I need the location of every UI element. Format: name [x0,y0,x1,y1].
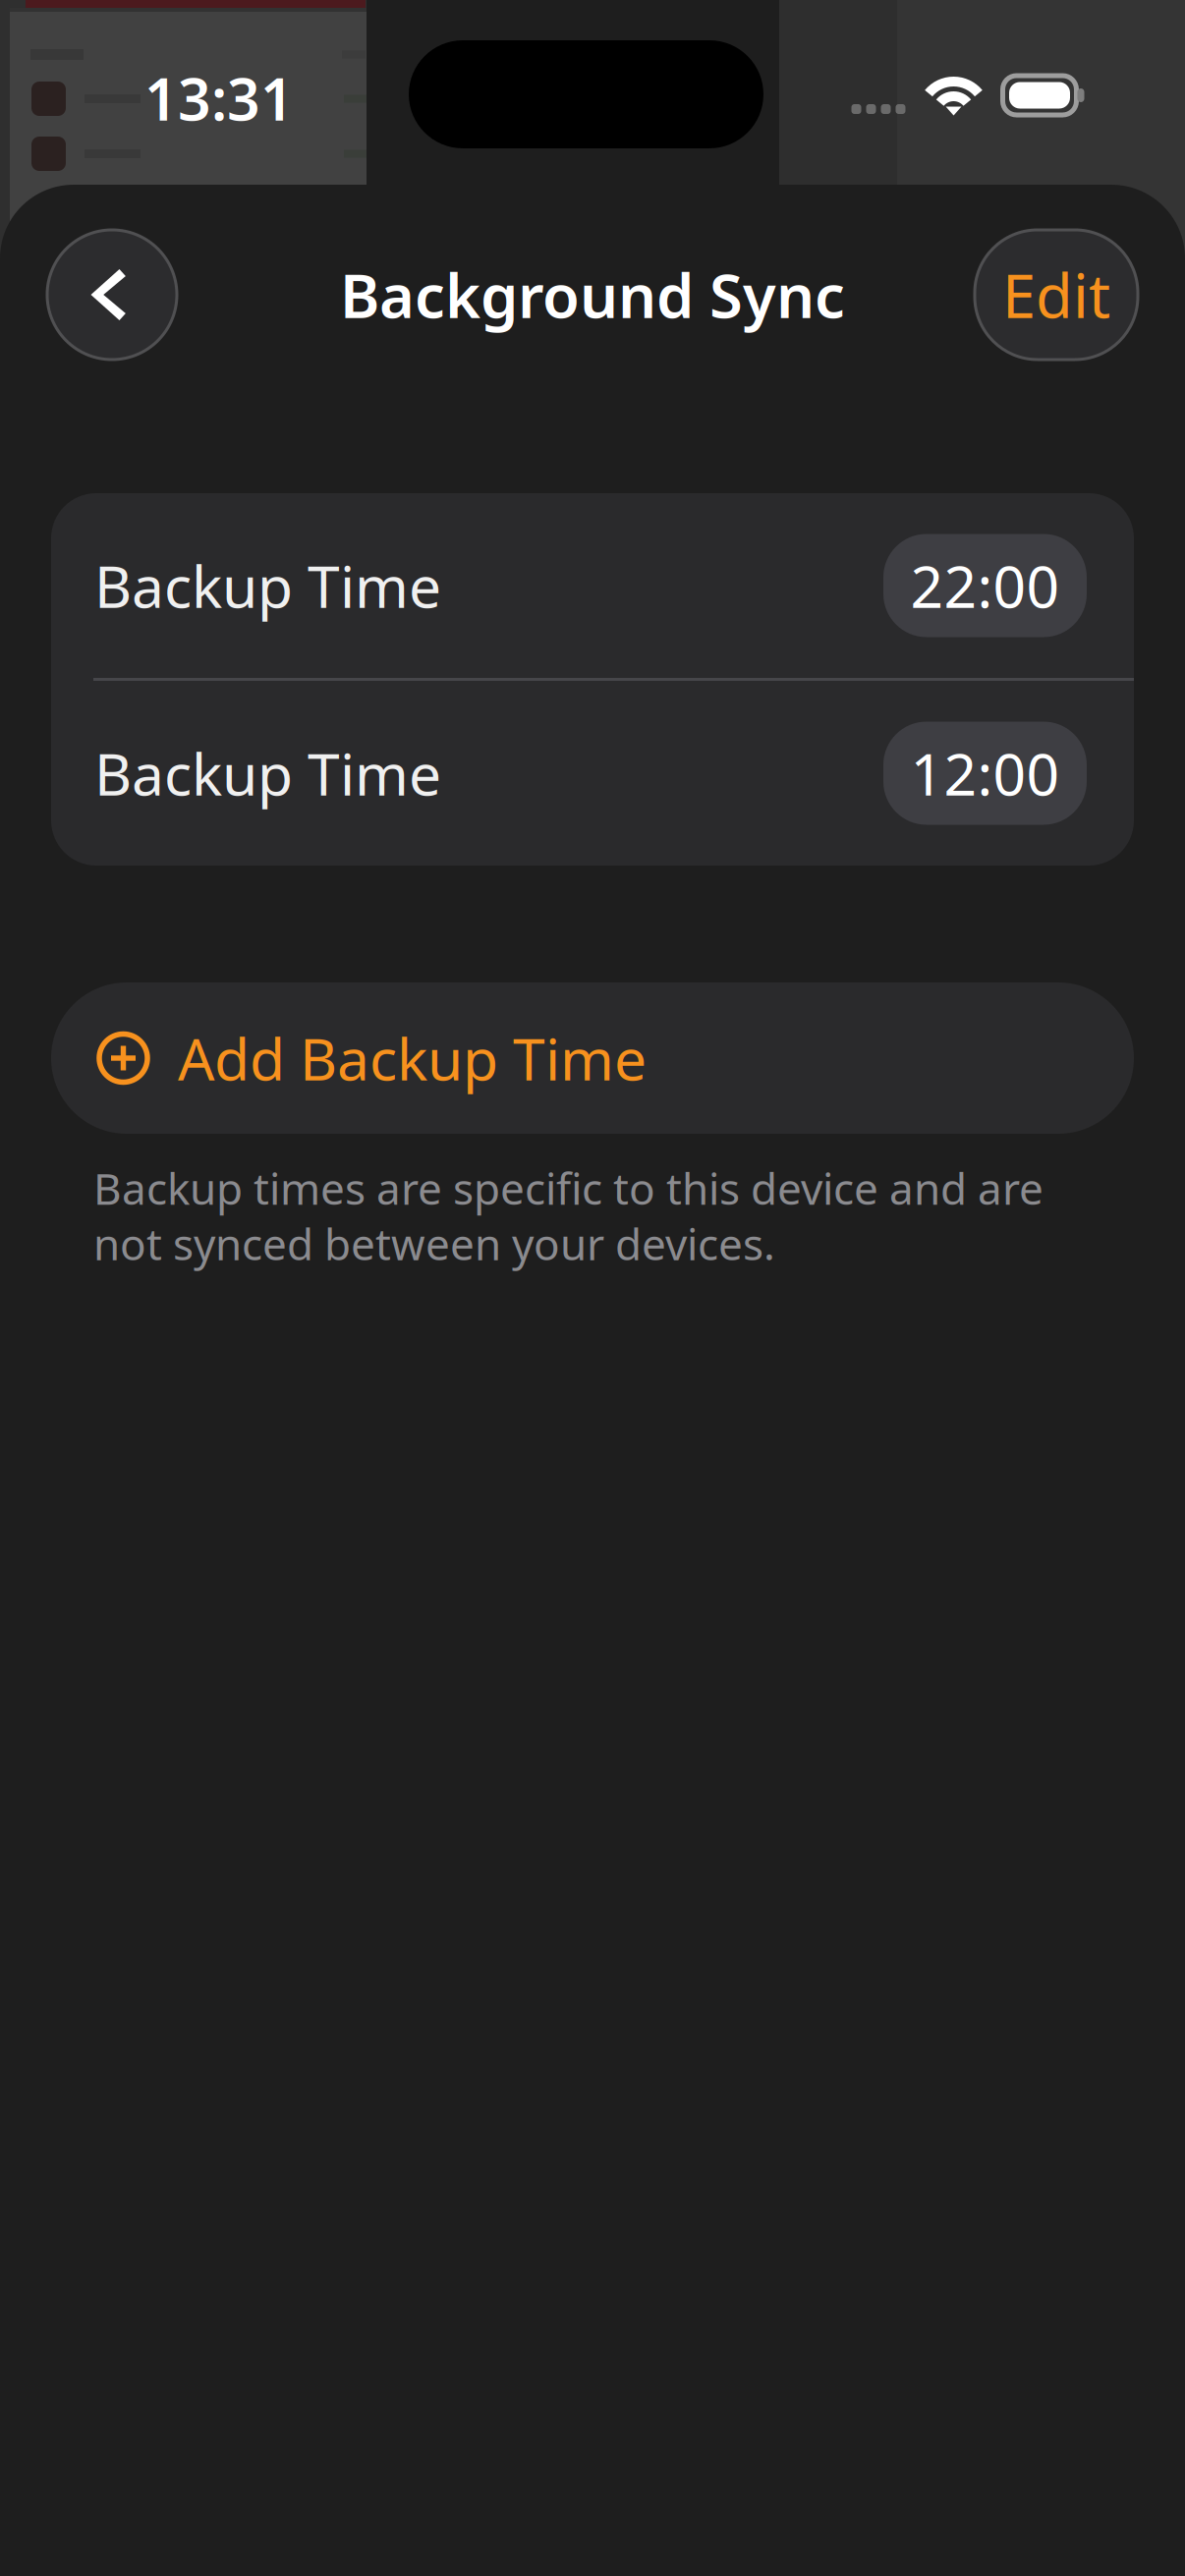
button[interactable]: Backup Time [51,493,1134,678]
staticText: 22:00 [910,547,1060,624]
staticText: Edit [1002,255,1110,335]
button[interactable]: Backup Time [51,681,1134,866]
staticText: Backup Time [94,547,441,624]
staticText: Background Sync [340,255,845,335]
staticText: Add Backup Time [178,1020,647,1096]
button[interactable]: Add Backup Time [51,982,1134,1134]
staticText: 12:00 [910,735,1060,811]
button[interactable]: Back [47,230,177,360]
staticText: not synced between your devices. [93,1215,775,1272]
button[interactable]: Edit [975,230,1138,360]
staticText: Backup times are specific to this device… [93,1159,1044,1217]
staticText: Backup Time [94,735,441,811]
staticText: 13:31 [144,60,294,136]
